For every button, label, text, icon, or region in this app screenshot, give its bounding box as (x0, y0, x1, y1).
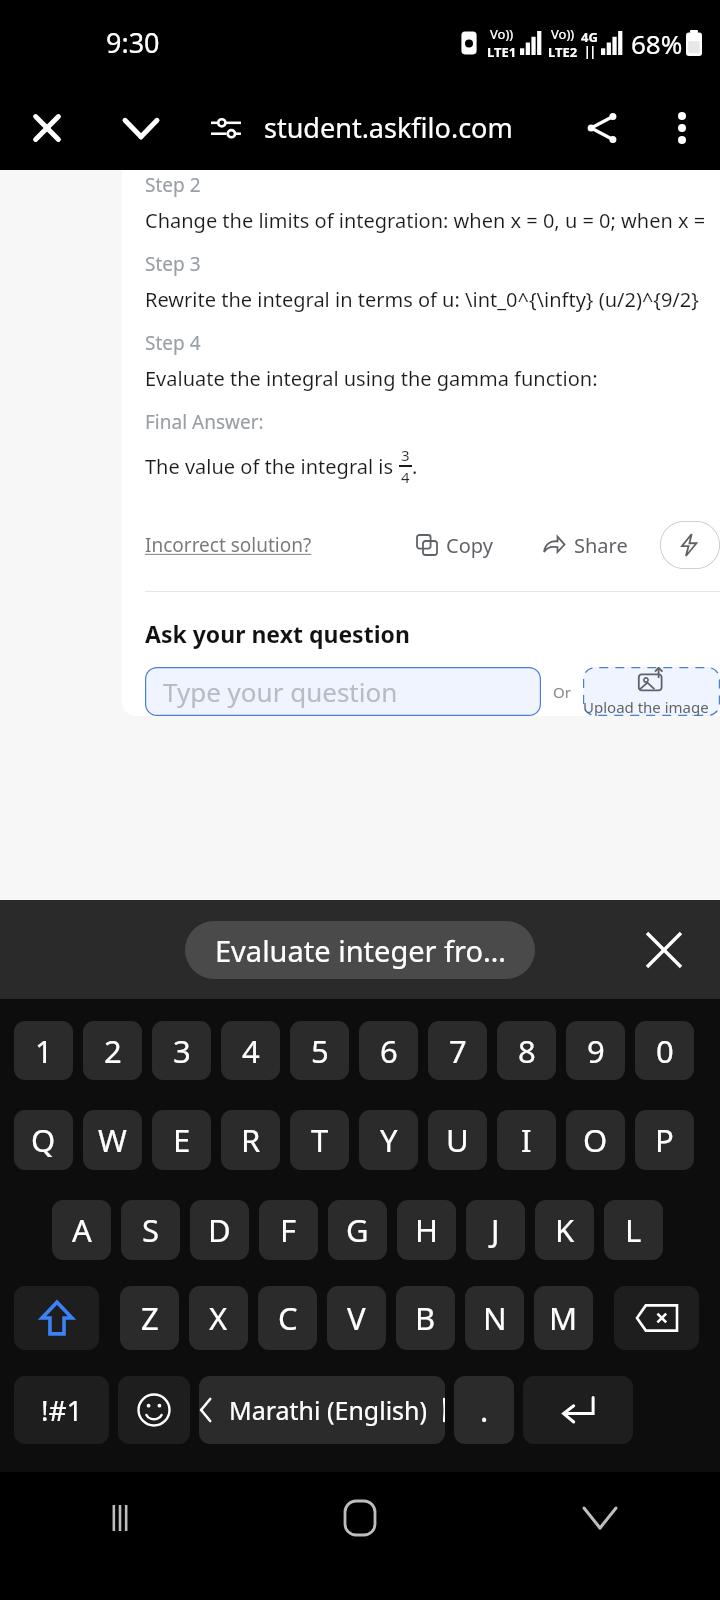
button[interactable]: V (327, 1286, 386, 1350)
staticText: 7 (449, 1030, 467, 1072)
staticText: 6 (380, 1030, 398, 1072)
button[interactable]: 5 (290, 1021, 349, 1080)
button[interactable]: Explain (660, 521, 720, 569)
button[interactable]: 2 (83, 1021, 142, 1080)
button[interactable]: M (534, 1286, 593, 1350)
button[interactable]: Share (525, 521, 646, 569)
staticText: Step 4 (145, 330, 201, 356)
button[interactable]: 9 (566, 1021, 625, 1080)
button[interactable]: A (52, 1200, 111, 1260)
button[interactable]: Backspace (614, 1286, 699, 1350)
button[interactable]: Shift (14, 1286, 99, 1350)
button[interactable]: C (258, 1286, 317, 1350)
staticText: Step 2 (145, 172, 201, 198)
button[interactable]: K (535, 1200, 594, 1260)
button[interactable]: X (189, 1286, 248, 1350)
button[interactable]: H (397, 1200, 456, 1260)
staticText: F (280, 1209, 297, 1251)
staticText: K (555, 1209, 575, 1251)
staticText: 1 (35, 1030, 53, 1072)
staticText: 4 (401, 467, 410, 487)
staticText: 68% (631, 26, 683, 61)
button[interactable]: Z (120, 1286, 179, 1350)
button[interactable]: Y (359, 1110, 418, 1170)
button[interactable]: Upload the image of yo (583, 667, 720, 716)
button[interactable]: Q (14, 1110, 73, 1170)
button[interactable]: Recents (0, 1472, 240, 1564)
button[interactable]: 4 (221, 1021, 280, 1080)
staticText: Marathi (English) (229, 1393, 428, 1427)
button[interactable]: G (328, 1200, 387, 1260)
staticText: X (209, 1297, 228, 1339)
button[interactable]: Evaluate integer fro… (185, 921, 535, 979)
staticText: LTE2 (548, 43, 578, 61)
button[interactable]: F (259, 1200, 318, 1260)
button[interactable]: T (290, 1110, 349, 1170)
button[interactable]: P (635, 1110, 694, 1170)
staticText: !#1 (41, 1391, 83, 1429)
button[interactable]: Emoji (118, 1376, 190, 1444)
staticText: 3 (173, 1030, 191, 1072)
button[interactable]: E (152, 1110, 211, 1170)
staticText: R (241, 1119, 261, 1161)
staticText: Final Answer: (145, 409, 264, 435)
staticText: Or (553, 682, 571, 702)
button[interactable]: B (396, 1286, 455, 1350)
staticText: C (278, 1297, 298, 1339)
button[interactable]: 0 (635, 1021, 694, 1080)
button[interactable]: L (604, 1200, 663, 1260)
button[interactable]: S (121, 1200, 180, 1260)
staticText: . (412, 453, 418, 480)
staticText: Vo)) (490, 25, 514, 43)
button[interactable]: J (466, 1200, 525, 1260)
staticText: LTE1 (487, 43, 517, 61)
button[interactable]: Enter (523, 1376, 633, 1444)
staticText: Q (31, 1119, 56, 1161)
button[interactable]: Close suggestions (638, 924, 690, 976)
button[interactable]: W (83, 1110, 142, 1170)
staticText: Rewrite the integral in terms of u: \int… (145, 286, 720, 313)
staticText: Evaluate the integral using the gamma fu… (145, 365, 720, 392)
button[interactable]: R (221, 1110, 280, 1170)
button[interactable]: 6 (359, 1021, 418, 1080)
button[interactable]: . (454, 1376, 514, 1444)
button[interactable]: 7 (428, 1021, 487, 1080)
staticText: P (655, 1119, 674, 1161)
button[interactable]: I (497, 1110, 556, 1170)
staticText: 0 (656, 1030, 674, 1072)
button[interactable]: Type your question (145, 667, 541, 716)
staticText: S (142, 1209, 160, 1251)
staticText: Ask your next question (145, 618, 410, 649)
button[interactable]: Copy (399, 521, 511, 569)
staticText: T (311, 1119, 329, 1161)
staticText: H (415, 1209, 438, 1251)
button[interactable]: Collapse (94, 85, 188, 170)
button[interactable]: U (428, 1110, 487, 1170)
button[interactable]: Marathi (English) (199, 1376, 445, 1444)
button[interactable]: N (465, 1286, 524, 1350)
staticText: 2 (104, 1030, 122, 1072)
button[interactable]: Close (0, 85, 94, 170)
button[interactable]: More options (644, 85, 720, 170)
staticText: . (480, 1389, 489, 1431)
button[interactable]: O (566, 1110, 625, 1170)
staticText: 9 (587, 1030, 605, 1072)
button[interactable]: !#1 (14, 1376, 109, 1444)
staticText: D (208, 1209, 231, 1251)
button[interactable]: Home (240, 1472, 480, 1564)
staticText: L (625, 1209, 642, 1251)
staticText: Y (380, 1119, 398, 1161)
button[interactable]: Share (560, 85, 644, 170)
button[interactable]: 3 (152, 1021, 211, 1080)
button[interactable]: Site settings (188, 85, 264, 170)
staticText: Evaluate integer fro… (215, 931, 506, 970)
staticText: Share (574, 532, 628, 559)
button[interactable]: Back (480, 1472, 720, 1564)
staticText: Upload the image of yo (583, 697, 720, 716)
staticText: student.askfilo.com (264, 109, 513, 146)
button[interactable]: 8 (497, 1021, 556, 1080)
staticText: G (346, 1209, 369, 1251)
button[interactable]: D (190, 1200, 249, 1260)
button[interactable]: Incorrect solution? (145, 532, 312, 558)
button[interactable]: 1 (14, 1021, 73, 1080)
